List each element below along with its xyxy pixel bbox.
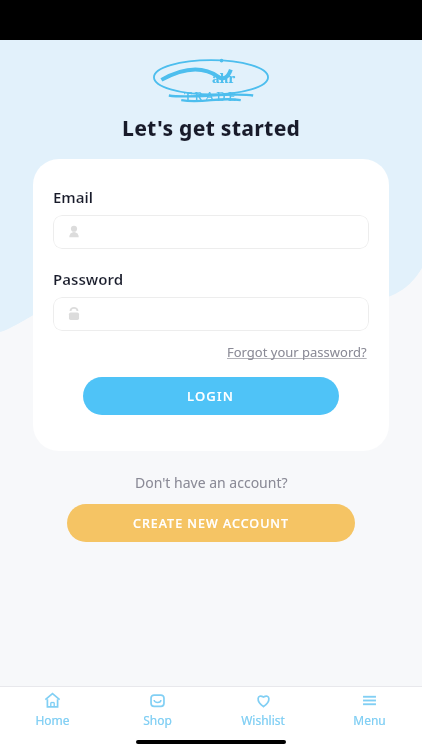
- staticText: CREATE NEW ACCOUNT: [133, 515, 290, 532]
- staticText: Wishlist: [241, 712, 285, 728]
- button[interactable]: Shop: [105, 687, 210, 733]
- staticText: Don't have an account?: [135, 473, 288, 492]
- staticText: Forgot your password?: [227, 343, 367, 361]
- staticText: Menu: [353, 712, 386, 728]
- staticText: Email: [53, 187, 94, 207]
- staticText: Let's get started: [122, 114, 301, 143]
- button[interactable]: LOGIN: [83, 377, 339, 415]
- button[interactable]: Menu: [316, 687, 422, 733]
- button[interactable]: Password: [53, 297, 369, 331]
- staticText: ahr: [212, 69, 236, 87]
- staticText: Shop: [143, 712, 172, 728]
- staticText: LOGIN: [187, 387, 235, 405]
- button[interactable]: Forgot your password?: [225, 341, 369, 363]
- button[interactable]: Home: [0, 687, 105, 733]
- button[interactable]: Wishlist: [210, 687, 316, 733]
- staticText: Password: [53, 269, 124, 289]
- staticText: TRADE: [184, 87, 239, 105]
- button[interactable]: Email: [53, 215, 369, 249]
- button[interactable]: CREATE NEW ACCOUNT: [67, 504, 355, 542]
- staticText: Home: [35, 712, 70, 728]
